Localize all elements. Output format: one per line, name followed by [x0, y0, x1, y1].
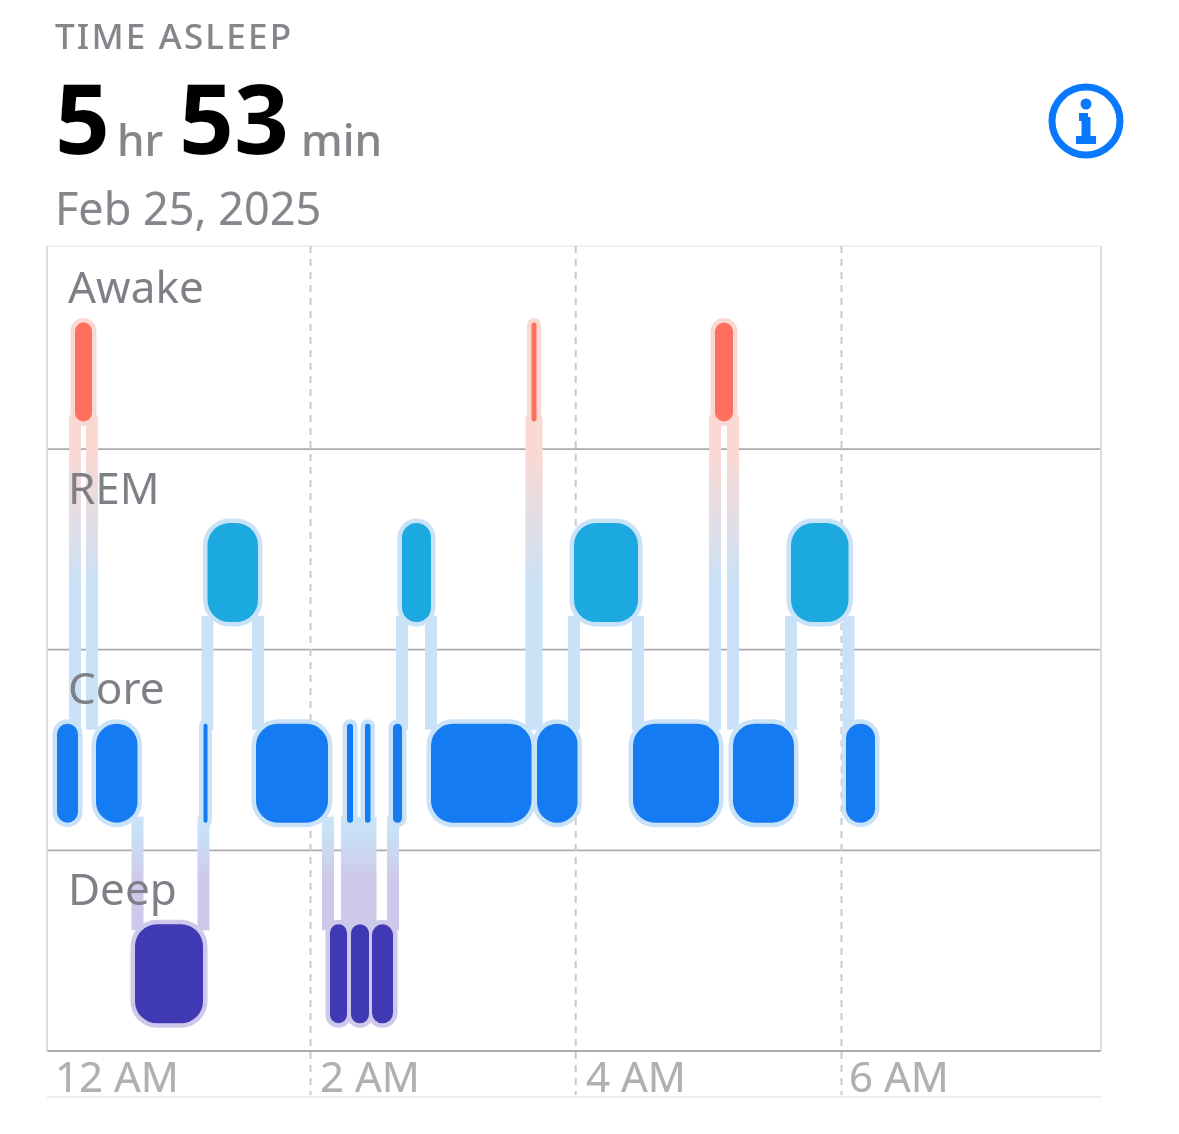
staticText: REM — [68, 457, 160, 517]
staticText: hr — [117, 109, 164, 169]
button[interactable] — [1048, 83, 1124, 159]
staticText: min — [301, 109, 383, 169]
staticText: 4 AM — [586, 1047, 686, 1104]
staticText: 6 AM — [849, 1047, 949, 1104]
staticText: 2 AM — [320, 1047, 420, 1104]
staticText: 5 — [55, 51, 110, 182]
staticText: Deep — [68, 858, 177, 918]
staticText: Core — [68, 657, 165, 717]
staticText: TIME ASLEEP — [55, 12, 294, 60]
staticText: Feb 25, 2025 — [55, 177, 322, 238]
staticText: Awake — [68, 256, 204, 316]
staticText: 53 — [179, 51, 289, 182]
staticText: 12 AM — [55, 1047, 179, 1104]
